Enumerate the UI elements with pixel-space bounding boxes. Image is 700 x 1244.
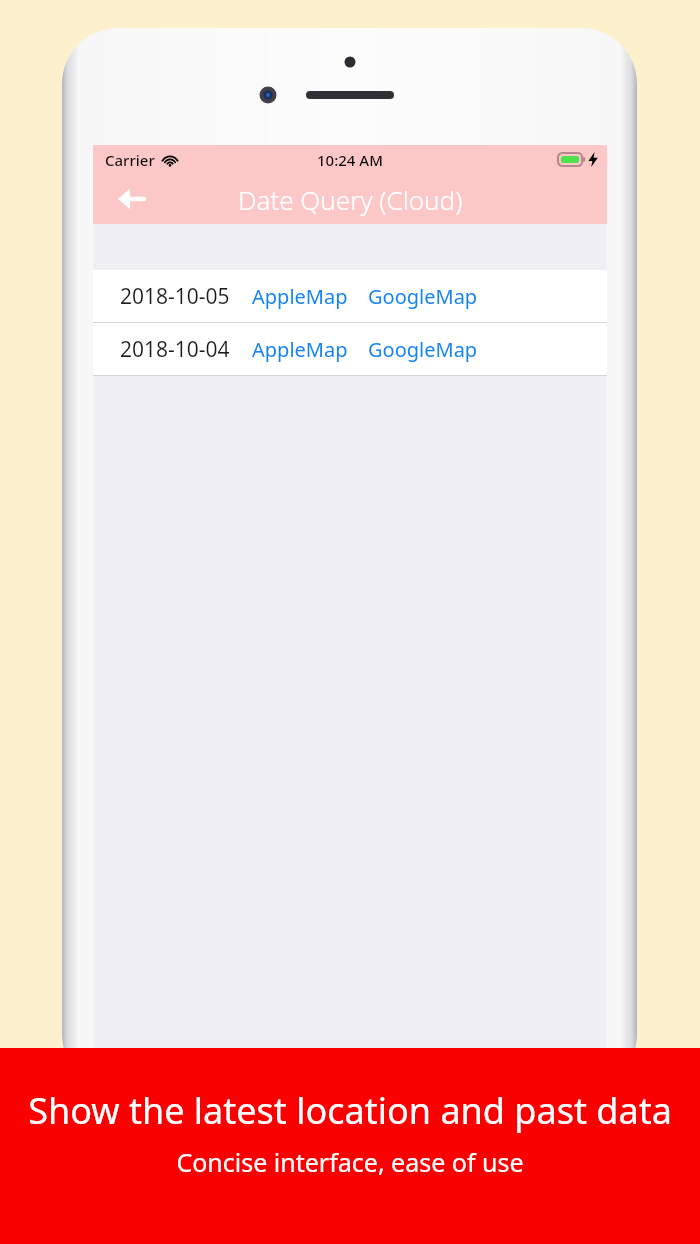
- staticText: GoogleMap: [368, 336, 478, 363]
- staticText: Date Query (Cloud): [238, 182, 463, 217]
- staticText: GoogleMap: [368, 283, 478, 310]
- staticText: Show the latest location and past data: [28, 1086, 672, 1135]
- button[interactable]: GoogleMap: [368, 336, 478, 363]
- staticText: 10:24 AM: [317, 150, 383, 170]
- staticText: AppleMap: [252, 336, 348, 363]
- staticText: Concise interface, ease of use: [176, 1145, 524, 1179]
- button[interactable]: 2018-10-05: [93, 270, 607, 322]
- staticText: AppleMap: [252, 283, 348, 310]
- button[interactable]: Back: [107, 175, 155, 223]
- staticText: 2018-10-04: [120, 335, 230, 364]
- button[interactable]: 2018-10-04: [93, 323, 607, 375]
- button[interactable]: GoogleMap: [368, 283, 478, 310]
- button[interactable]: AppleMap: [252, 336, 348, 363]
- staticText: Carrier: [105, 150, 155, 170]
- button[interactable]: AppleMap: [252, 283, 348, 310]
- staticText: 2018-10-05: [120, 282, 230, 311]
